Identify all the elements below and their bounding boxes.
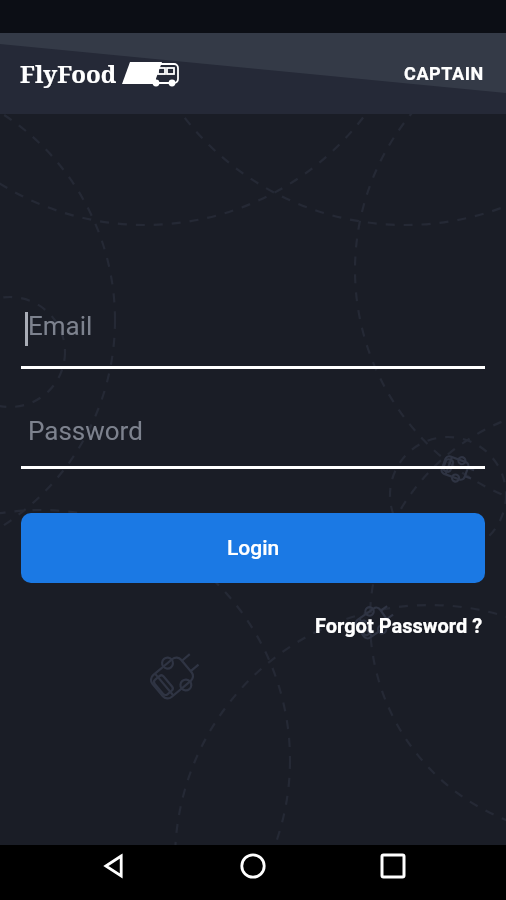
button[interactable] — [90, 842, 138, 890]
staticText: Login — [227, 536, 280, 561]
button[interactable] — [229, 842, 277, 890]
button[interactable] — [369, 842, 417, 890]
button[interactable]: Login — [21, 513, 485, 583]
staticText: FlyFood — [20, 57, 117, 90]
staticText: Email — [28, 311, 93, 341]
button[interactable]: CAPTAIN — [404, 63, 484, 84]
staticText: Password — [28, 416, 143, 446]
button[interactable]: Forgot Password ? — [315, 614, 483, 637]
button[interactable]: FlyFood — [20, 57, 182, 90]
